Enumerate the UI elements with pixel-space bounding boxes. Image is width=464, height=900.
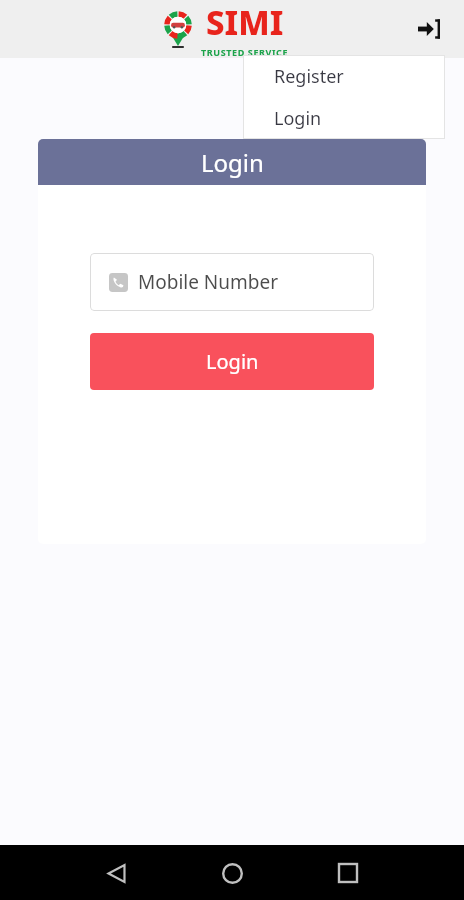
button[interactable]: Login xyxy=(243,97,445,139)
staticText: Register xyxy=(274,64,344,89)
button[interactable]: Mobile Number xyxy=(90,253,374,311)
staticText: Login xyxy=(206,348,259,375)
button[interactable]: Back xyxy=(96,853,136,893)
button[interactable]: Home xyxy=(212,853,252,893)
button[interactable]: Sign in xyxy=(412,12,446,46)
staticText: SIMI xyxy=(206,0,284,45)
staticText: Login xyxy=(274,106,322,131)
button[interactable]: Register xyxy=(243,55,445,97)
staticText: Login xyxy=(201,146,264,179)
button[interactable]: Login xyxy=(90,333,374,390)
staticText: Mobile Number xyxy=(138,269,279,295)
staticText: TRUSTED SERVICE xyxy=(201,46,289,58)
button[interactable]: Recents xyxy=(328,853,368,893)
